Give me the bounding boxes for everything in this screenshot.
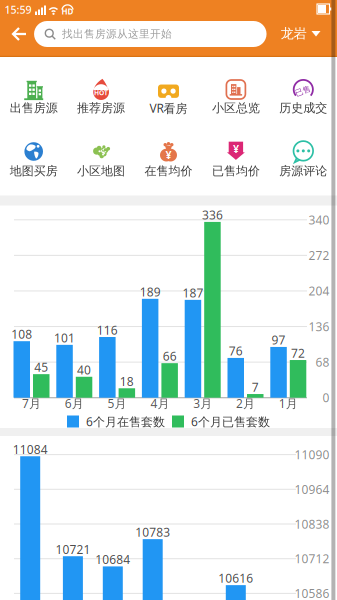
staticText: 小区地图 (77, 164, 125, 178)
staticText: 1月 (279, 395, 298, 411)
staticText: 10964 (294, 481, 329, 497)
staticText: 已售 (295, 86, 311, 96)
staticText: 10616 (218, 570, 253, 586)
staticText: 97 (271, 332, 285, 348)
staticText: 已售均价 (212, 164, 260, 178)
staticText: 336 (202, 207, 223, 223)
staticText: 72 (291, 345, 305, 361)
staticText: 76 (229, 343, 243, 359)
staticText: 龙岩 (280, 25, 306, 42)
staticText: 272 (308, 247, 329, 263)
staticText: VR看房 (149, 100, 187, 116)
staticText: 出售房源 (10, 101, 58, 115)
staticText: 66 (163, 348, 177, 364)
staticText: 3月 (193, 395, 212, 411)
staticText: 10712 (294, 551, 329, 567)
staticText: 历史成交 (279, 101, 327, 115)
button[interactable]: 出售房源 (2, 70, 66, 126)
staticText: 101 (54, 330, 75, 346)
staticText: 11090 (294, 447, 329, 462)
staticText: 房源评论 (279, 164, 327, 178)
staticText: 7 (252, 379, 259, 395)
staticText: 6个月已售套数 (191, 413, 270, 429)
staticText: 116 (97, 322, 118, 338)
staticText: 136 (308, 319, 329, 334)
button[interactable]: 历史成交 (271, 70, 335, 126)
staticText: HOT (94, 88, 108, 97)
staticText: 340 (308, 212, 329, 228)
staticText: 6月 (65, 395, 84, 411)
staticText: ¥ (165, 148, 171, 162)
staticText: 10721 (55, 541, 90, 557)
button[interactable]: 推荐房源 (69, 70, 133, 126)
button[interactable]: 在售均价 (136, 132, 200, 188)
staticText: 找出售房源从这里开始 (62, 27, 172, 40)
button[interactable]: 找出售房源从这里开始 (34, 21, 267, 47)
staticText: 40 (77, 362, 91, 378)
staticText: 推荐房源 (77, 101, 125, 115)
button[interactable]: 龙岩 (280, 25, 320, 42)
staticText: 189 (140, 284, 161, 300)
button[interactable]: 小区地图 (69, 132, 133, 188)
staticText: 10838 (294, 516, 329, 532)
staticText: 2月 (236, 395, 255, 411)
staticText: 地图买房 (10, 164, 58, 178)
button[interactable]: VR看房 (136, 70, 200, 126)
button[interactable]: 房源评论 (271, 132, 335, 188)
button[interactable]: 地图买房 (2, 132, 66, 188)
button[interactable] (4, 19, 34, 49)
staticText: 108 (11, 326, 32, 342)
staticText: 10684 (95, 551, 130, 567)
staticText: 4月 (150, 395, 169, 411)
staticText: 18 (120, 373, 134, 389)
staticText: HD (61, 6, 73, 17)
staticText: 15:59 (4, 2, 31, 17)
staticText: 0 (322, 390, 329, 406)
staticText: 45 (34, 359, 48, 375)
staticText: 204 (308, 283, 329, 299)
staticText: 6个月在售套数 (86, 413, 165, 429)
staticText: 在售均价 (144, 164, 192, 178)
button[interactable]: 小区总览 (204, 70, 268, 126)
staticText: 7月 (22, 395, 41, 411)
button[interactable]: 已售均价 (204, 132, 268, 188)
staticText: 11084 (13, 441, 48, 457)
staticText: 10586 (294, 585, 329, 600)
staticText: 68 (315, 354, 329, 370)
staticText: 187 (182, 285, 203, 301)
staticText: 小区总览 (212, 101, 260, 115)
staticText: ¥ (233, 142, 239, 156)
staticText: 5月 (108, 395, 127, 411)
staticText: 10783 (135, 524, 170, 540)
